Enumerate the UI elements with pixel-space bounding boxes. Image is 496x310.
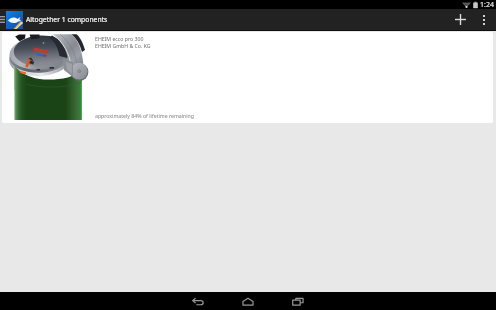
- button[interactable]: Navigate up: [0, 9, 6, 30]
- button[interactable]: Recent apps: [281, 292, 315, 310]
- button[interactable]: Home: [231, 292, 265, 310]
- staticText: Altogether 1 components: [26, 15, 108, 24]
- button[interactable]: Add: [449, 9, 471, 30]
- button[interactable]: More options: [471, 9, 496, 30]
- staticText: EHEIM ecco pro 300: [95, 35, 144, 42]
- staticText: EHEIM GmbH & Co. KG: [95, 42, 151, 49]
- button[interactable]: EHEIM ecco pro 300: [2, 32, 493, 123]
- staticText: approximately 84% of lifetime remaining: [95, 112, 194, 119]
- staticText: 1:24: [480, 0, 494, 9]
- button[interactable]: Back: [181, 292, 215, 310]
